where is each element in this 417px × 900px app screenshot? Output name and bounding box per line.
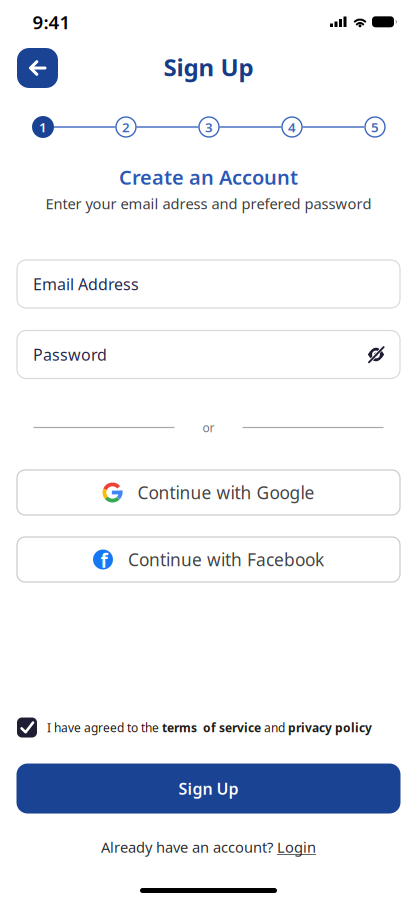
staticText: Email Address xyxy=(33,273,139,295)
button[interactable]: Login xyxy=(277,837,316,857)
staticText: Continue with Google xyxy=(137,481,314,504)
staticText: Continue with Facebook xyxy=(128,548,324,571)
staticText: Enter your email adress and prefered pas… xyxy=(45,194,371,213)
button[interactable]: f xyxy=(17,537,400,582)
staticText: Sign Up xyxy=(178,778,238,799)
staticText: Already have an account? xyxy=(101,837,273,857)
staticText: Login xyxy=(277,837,316,857)
button[interactable]: Sign Up xyxy=(16,763,400,813)
staticText: Create an Account xyxy=(119,164,298,190)
button[interactable]: Email Address xyxy=(17,260,400,308)
staticText: 2 xyxy=(122,118,130,136)
staticText: 5 xyxy=(371,118,379,136)
staticText: Password xyxy=(33,344,107,365)
staticText: I have agreed to the terms of service an… xyxy=(47,719,372,735)
button[interactable]: I have agreed xyxy=(17,717,37,737)
button[interactable]: Password xyxy=(17,330,400,378)
staticText: 4 xyxy=(288,118,296,136)
staticText: f xyxy=(100,548,107,573)
staticText: or xyxy=(202,419,214,435)
staticText: Sign Up xyxy=(163,51,253,83)
staticText: 9:41 xyxy=(32,10,70,34)
staticText: 3 xyxy=(205,118,213,136)
staticText: 1 xyxy=(39,118,47,136)
button[interactable]: Back xyxy=(17,48,58,88)
button[interactable]: Show password xyxy=(366,344,386,364)
button[interactable]: Continue with Google xyxy=(17,470,400,515)
